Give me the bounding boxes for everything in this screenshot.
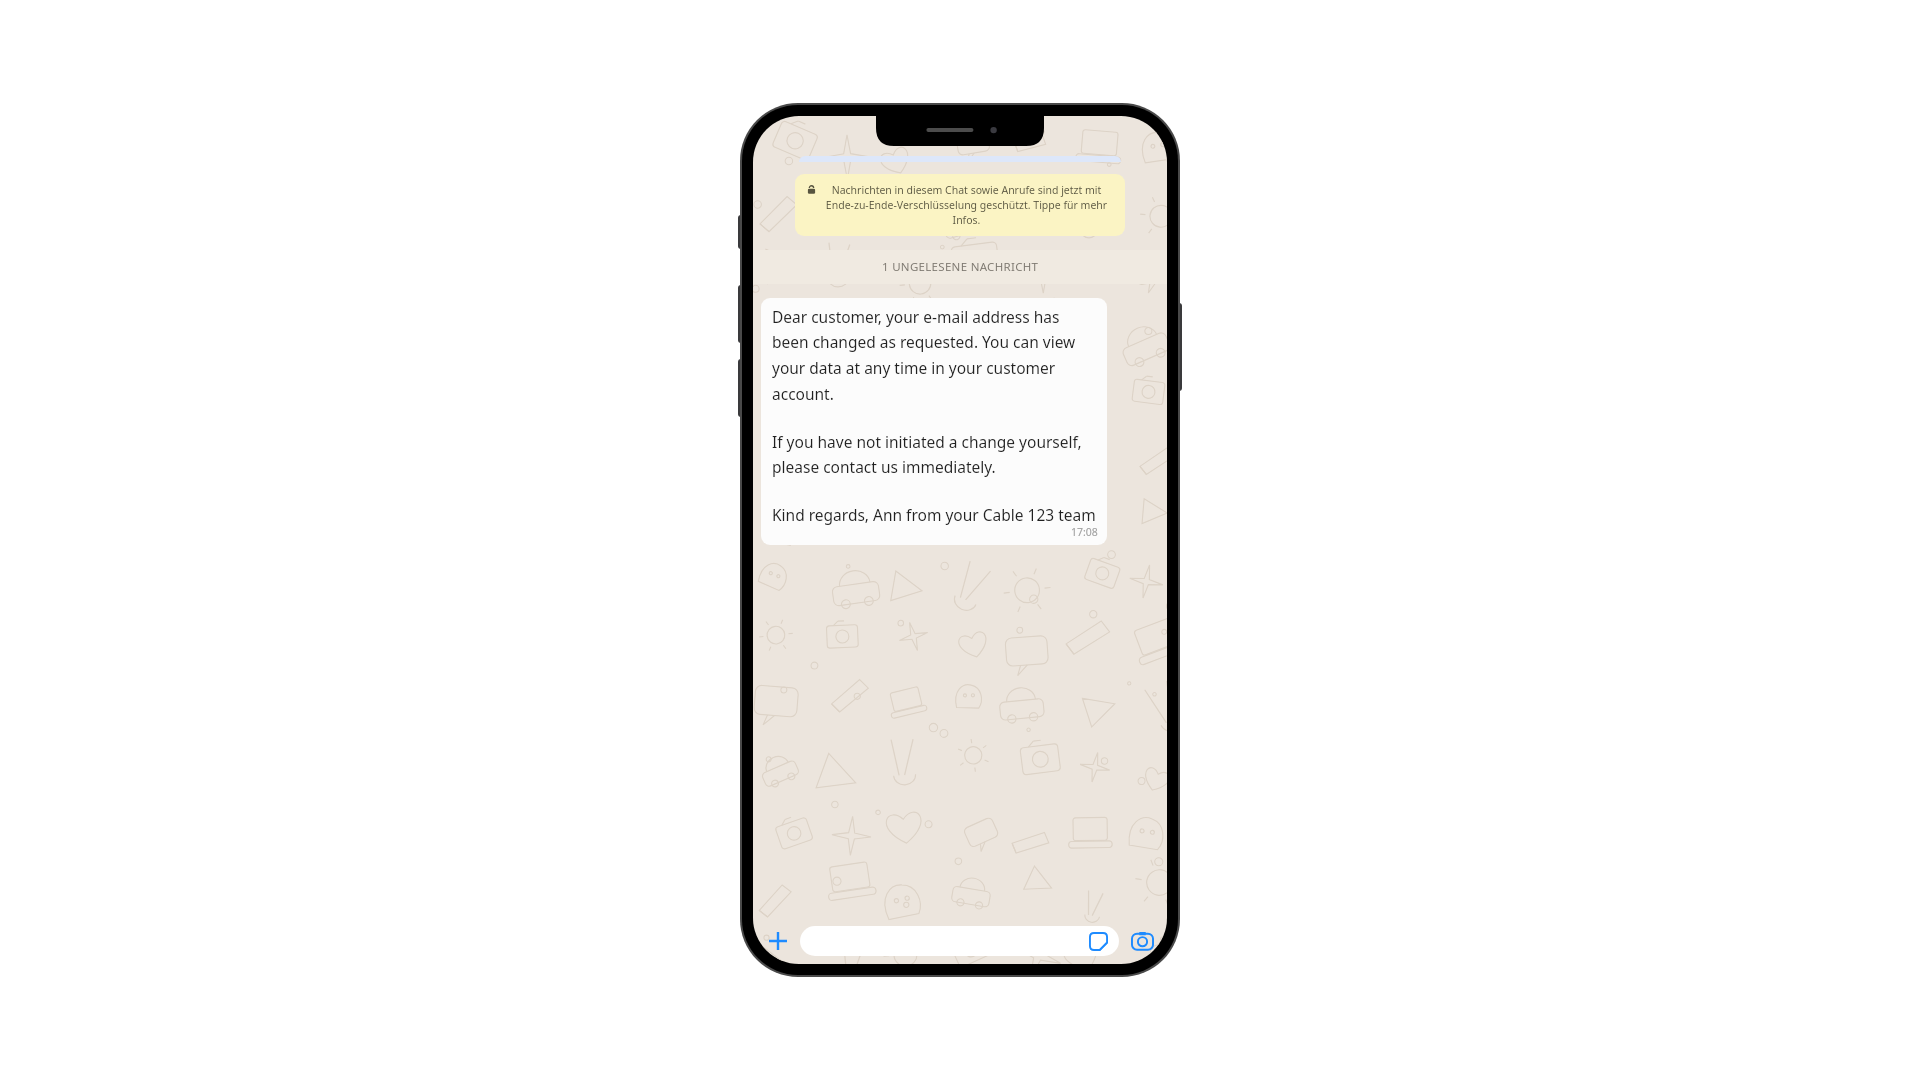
- staticText: Nachrichten in diesem Chat sowie Anrufe …: [820, 183, 1113, 227]
- staticText: Dear customer, your e-mail address has b…: [772, 306, 1098, 405]
- button[interactable]: Camera: [1127, 926, 1157, 956]
- staticText: Kind regards, Ann from your Cable 123 te…: [772, 504, 1096, 525]
- staticText: 1 UNGELESENE NACHRICHT: [882, 259, 1039, 275]
- button[interactable]: Stickers: [800, 926, 1119, 956]
- button[interactable]: Dear customer, your e-mail address has b…: [761, 298, 1107, 545]
- button[interactable]: Nachrichten in diesem Chat sowie Anrufe …: [795, 174, 1125, 236]
- staticText: 17:08: [1071, 525, 1098, 539]
- button[interactable]: Stickers: [1087, 930, 1109, 952]
- staticText: If you have not initiated a change yours…: [772, 431, 1098, 478]
- button[interactable]: Attach: [759, 922, 797, 960]
